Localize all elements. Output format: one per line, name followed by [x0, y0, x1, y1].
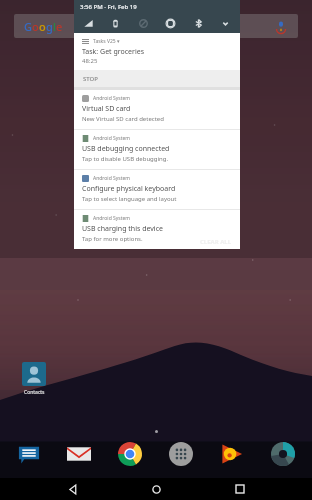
staticText: Tap to disable USB debugging.: [82, 155, 169, 163]
staticText: g: [46, 19, 53, 34]
button[interactable]: Do not disturb: [137, 17, 150, 30]
staticText: STOP: [83, 75, 98, 83]
button[interactable]: Chrome: [113, 437, 147, 471]
staticText: Tap for more options.: [82, 235, 143, 243]
staticText: 48:25: [82, 57, 98, 65]
button[interactable]: G: [14, 14, 298, 38]
staticText: Task: Get groceries: [82, 47, 145, 57]
button[interactable]: Tasks V25 ▾: [74, 33, 240, 70]
staticText: Configure physical keyboard: [82, 184, 176, 194]
staticText: o: [39, 19, 46, 34]
staticText: Android System: [93, 215, 131, 222]
button[interactable]: Bluetooth: [192, 17, 205, 30]
staticText: CLEAR ALL: [200, 238, 232, 246]
staticText: Android System: [93, 135, 131, 142]
staticText: Tap to select language and layout: [82, 195, 177, 203]
button[interactable]: Play Music: [215, 437, 249, 471]
staticText: l: [53, 19, 56, 34]
button[interactable]: Back: [62, 478, 84, 500]
staticText: New Virtual SD card detected: [82, 115, 164, 123]
button[interactable]: Apps: [164, 437, 198, 471]
staticText: o: [32, 19, 39, 34]
button[interactable]: Android System: [74, 90, 240, 129]
staticText: USB charging this device: [82, 224, 163, 234]
button[interactable]: Messages: [12, 437, 46, 471]
staticText: Virtual SD card: [82, 104, 131, 114]
staticText: Tasks V25 ▾: [93, 38, 120, 45]
button[interactable]: CLEAR ALL: [196, 236, 236, 248]
staticText: Android System: [93, 175, 131, 182]
button[interactable]: Auto rotate: [164, 17, 177, 30]
button[interactable]: Camera: [266, 437, 300, 471]
staticText: G: [24, 19, 32, 34]
button[interactable]: Android System: [74, 209, 240, 249]
button[interactable]: Gmail: [62, 437, 96, 471]
button[interactable]: Battery: [109, 17, 122, 30]
button[interactable]: Contacts: [12, 362, 56, 396]
other: Voice search: [274, 19, 288, 33]
staticText: e: [56, 19, 63, 34]
button[interactable]: Home: [145, 478, 167, 500]
button[interactable]: Signal: [82, 17, 95, 30]
button[interactable]: Expand: [219, 17, 232, 30]
button[interactable]: Android System: [74, 129, 240, 169]
staticText: Android System: [93, 95, 131, 102]
button[interactable]: Recents: [229, 478, 251, 500]
staticText: Contacts: [24, 389, 45, 396]
button[interactable]: STOP: [74, 70, 240, 87]
staticText: USB debugging connected: [82, 144, 170, 154]
button[interactable]: Android System: [74, 169, 240, 209]
staticText: 3:56 PM · Fri, Feb 19: [80, 3, 137, 11]
